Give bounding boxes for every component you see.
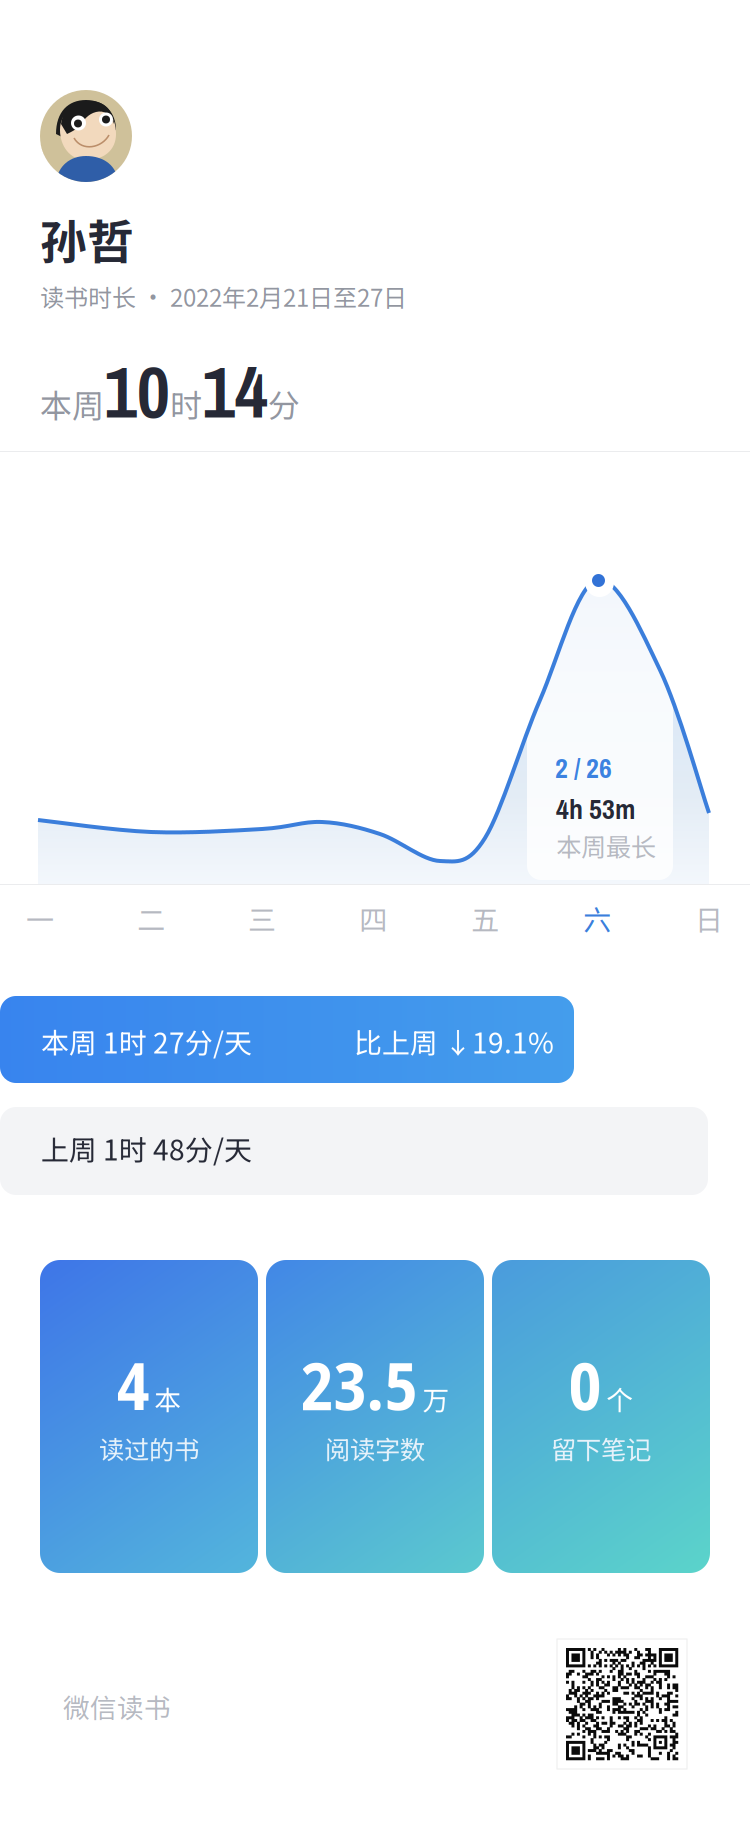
staticText: 一 xyxy=(26,898,54,938)
staticText: 2 / 26 xyxy=(555,749,612,787)
button[interactable]: 0 xyxy=(492,1260,710,1573)
staticText: 本周最长 xyxy=(556,827,656,864)
staticText: 0 xyxy=(568,1339,601,1430)
staticText: 二 xyxy=(137,898,165,938)
staticText: 四 xyxy=(359,898,387,938)
staticText: 分 xyxy=(268,380,300,427)
staticText: 23.5 xyxy=(300,1339,417,1430)
staticText: 读书时长 · 2022年2月21日至27日 xyxy=(40,279,407,314)
button[interactable]: 上周 1时 48分/天 xyxy=(0,1107,708,1195)
staticText: 本周 1时 27分/天 xyxy=(41,1021,252,1061)
staticText: 本 xyxy=(154,1379,181,1418)
button[interactable]: 23.5 xyxy=(266,1260,484,1573)
staticText: 五 xyxy=(471,898,499,938)
staticText: 4 xyxy=(116,1339,149,1430)
staticText: 六 xyxy=(583,898,611,938)
staticText: 本周 xyxy=(40,380,104,427)
staticText: 14 xyxy=(202,343,268,440)
staticText: 微信读书 xyxy=(63,1687,171,1726)
staticText: 日 xyxy=(695,898,723,938)
staticText: 万 xyxy=(422,1379,449,1418)
staticText: 三 xyxy=(248,898,276,938)
button[interactable]: 4 xyxy=(40,1260,258,1573)
staticText: 时 xyxy=(170,380,202,427)
staticText: 留下笔记 xyxy=(551,1430,651,1466)
staticText: 孙哲 xyxy=(40,205,134,273)
staticText: 10 xyxy=(104,343,170,440)
staticText: 上周 1时 48分/天 xyxy=(41,1128,252,1168)
staticText: 个 xyxy=(606,1379,633,1418)
button[interactable]: 本周 1时 27分/天 xyxy=(0,996,574,1083)
staticText: 读过的书 xyxy=(99,1430,199,1466)
staticText: 4h 53m xyxy=(556,790,635,828)
staticText: 比上周 ↓19.1% xyxy=(354,1021,554,1061)
staticText: 阅读字数 xyxy=(325,1430,425,1466)
